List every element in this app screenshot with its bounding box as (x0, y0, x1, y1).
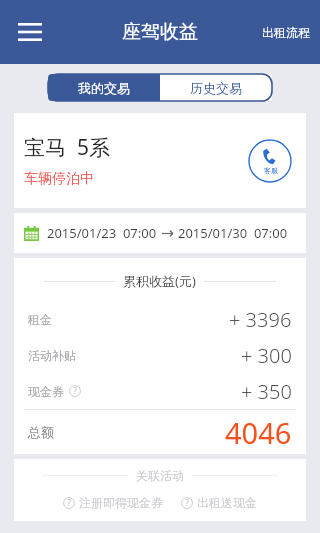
staticText: 2015/01/30 07:00 (178, 224, 288, 242)
staticText: 注册即得现金券 (79, 495, 163, 510)
staticText: 出租送现金 (197, 495, 257, 510)
button[interactable]: 客服 Customer service (248, 139, 292, 183)
staticText: 车辆停泊中 (24, 170, 94, 188)
button[interactable]: 历史交易 (160, 74, 272, 101)
staticText: 关联活动 (136, 468, 184, 483)
button[interactable]: ? (179, 493, 259, 512)
staticText: 2015/01/23 07:00 (47, 224, 157, 242)
staticText: 租金 (28, 312, 52, 327)
staticText: 现金券 (28, 384, 64, 399)
staticText: 出租流程 (262, 25, 310, 40)
staticText: 活动补贴 (28, 348, 76, 363)
staticText: + 3396 (229, 306, 292, 333)
staticText: + 350 (241, 378, 292, 405)
button[interactable]: 出租流程 (252, 15, 320, 50)
staticText: 历史交易 (190, 80, 242, 96)
staticText: ? (185, 497, 189, 509)
staticText: ? (73, 385, 77, 397)
staticText: + 300 (241, 342, 292, 369)
staticText: 客服 (264, 166, 278, 175)
staticText: 累积收益(元) (123, 272, 196, 290)
button[interactable]: ? (61, 493, 165, 512)
button[interactable]: Menu (8, 10, 52, 54)
staticText: 宝马 5系 (24, 133, 110, 162)
button[interactable]: 我的交易 (48, 74, 160, 101)
staticText: 座驾收益 (122, 20, 198, 44)
button[interactable]: 2015/01/23 07:00 (14, 213, 306, 253)
staticText: 4046 (225, 413, 292, 452)
staticText: ? (67, 497, 71, 509)
staticText: 我的交易 (78, 80, 130, 96)
staticText: 总额 (28, 424, 54, 440)
